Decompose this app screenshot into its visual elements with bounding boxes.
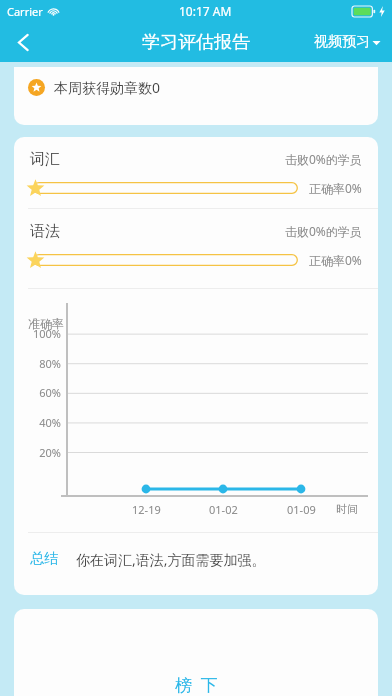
button[interactable]: 榜 下 — [14, 609, 378, 696]
staticText: 总结 — [30, 550, 58, 568]
button[interactable]: 总结 — [14, 533, 378, 595]
staticText: 语法 — [30, 222, 60, 241]
button[interactable]: 本周获得勋章数0 — [14, 67, 378, 125]
staticText: 80% — [39, 356, 61, 371]
button[interactable]: Back — [0, 22, 46, 62]
staticText: Carrier — [7, 4, 43, 19]
staticText: 60% — [39, 385, 61, 400]
staticText: 01-09 — [287, 502, 316, 517]
staticText: 正确率0% — [309, 252, 362, 268]
staticText: 榜 下 — [175, 673, 218, 696]
button[interactable]: 词汇 — [14, 137, 378, 208]
staticText: 40% — [39, 415, 61, 430]
staticText: 你在词汇,语法,方面需要加强。 — [76, 550, 266, 569]
staticText: 本周获得勋章数0 — [54, 78, 161, 97]
staticText: 时间 — [336, 502, 358, 516]
staticText: 视频预习 — [314, 33, 370, 51]
button[interactable]: 视频预习 — [309, 26, 386, 58]
staticText: 学习评估报告 — [142, 31, 250, 54]
button[interactable]: 语法 — [14, 209, 378, 280]
staticText: 10:17 AM — [179, 3, 232, 19]
staticText: 01-02 — [209, 502, 238, 517]
staticText: 词汇 — [30, 150, 60, 169]
staticText: 击败0%的学员 — [285, 223, 362, 239]
staticText: 击败0%的学员 — [285, 151, 362, 167]
staticText: 准确率 — [28, 316, 64, 331]
staticText: 20% — [39, 445, 61, 460]
staticText: 12-19 — [132, 502, 161, 517]
staticText: 100% — [32, 326, 61, 341]
staticText: 正确率0% — [309, 180, 362, 196]
